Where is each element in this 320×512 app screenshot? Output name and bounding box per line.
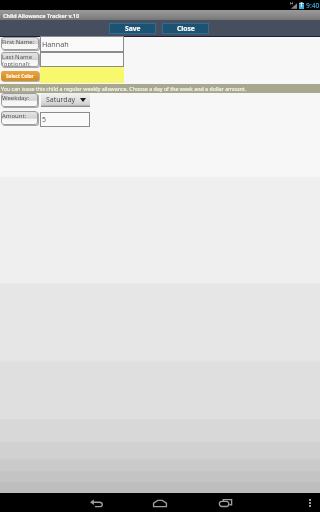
staticText: Save (125, 24, 141, 33)
staticText: Close (177, 24, 195, 33)
staticText: 5 (42, 115, 47, 125)
button[interactable]: First Name: (1, 37, 39, 50)
button[interactable]: Last Name (optional): (1, 52, 39, 67)
staticText: 9:40 (306, 1, 320, 10)
button[interactable]: Back (82, 493, 110, 512)
staticText: Weekday: (2, 94, 30, 102)
button[interactable]: Amount: (1, 111, 38, 125)
staticText: You can issue this child a regular weekl… (1, 85, 247, 92)
staticText: First Name: (2, 38, 35, 46)
button[interactable]: Close (162, 23, 209, 34)
button[interactable]: More options (303, 493, 317, 512)
button[interactable]: Recent apps (211, 493, 239, 512)
staticText: Select Color (6, 73, 34, 79)
button[interactable]: Select Color (1, 71, 39, 81)
button[interactable]: Weekday: (1, 93, 38, 107)
staticText: Child Allowance Tracker v.10 (3, 12, 80, 19)
button[interactable]: Saturday (41, 93, 90, 107)
staticText: Hannah (42, 39, 69, 49)
button[interactable]: Home (146, 493, 174, 512)
staticText: Saturday (46, 95, 76, 105)
button[interactable]: Save (109, 23, 156, 34)
staticText: Last Name (optional): (2, 53, 33, 67)
staticText: Amount: (2, 112, 27, 120)
